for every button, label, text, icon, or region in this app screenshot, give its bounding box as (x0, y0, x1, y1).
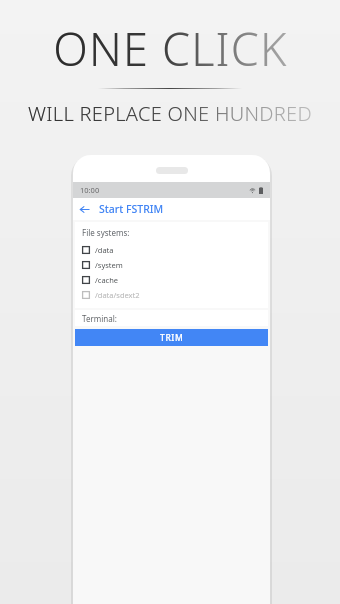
staticText: 10:00 (80, 185, 100, 195)
staticText: WILL REPLACE ONE HUNDRED (28, 100, 312, 127)
staticText: /data/sdext2 (95, 290, 140, 300)
button[interactable]: TRIM (75, 329, 268, 346)
staticText: /cache (95, 275, 119, 285)
staticText: File systems: (82, 227, 130, 238)
button[interactable]: /cache (82, 272, 261, 287)
button[interactable]: /data/sdext2 (82, 287, 261, 302)
staticText: TRIM (160, 332, 184, 344)
staticText: ONE CLICK (53, 18, 288, 79)
staticText: Terminal: (82, 313, 117, 324)
button[interactable]: /data (82, 242, 261, 257)
staticText: Start FSTRIM (99, 202, 164, 216)
button[interactable]: /system (82, 257, 261, 272)
staticText: /data (95, 245, 114, 255)
staticText: /system (95, 260, 123, 270)
button[interactable]: Back (73, 198, 95, 220)
